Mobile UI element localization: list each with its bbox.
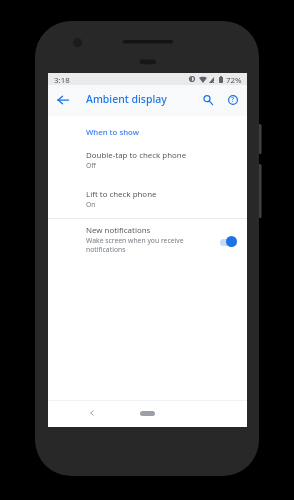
button[interactable]: Lift to check phone bbox=[48, 182, 247, 215]
button[interactable]: Home bbox=[140, 411, 155, 416]
button[interactable]: New notifications bbox=[48, 218, 247, 262]
staticText: ? bbox=[231, 95, 235, 105]
staticText: Wake screen when you receive notificatio… bbox=[86, 236, 184, 254]
staticText: 3:18 bbox=[54, 75, 70, 86]
button[interactable]: Double-tap to check phone bbox=[48, 143, 247, 176]
staticText: Lift to check phone bbox=[86, 189, 157, 200]
button[interactable]: New notifications toggle bbox=[219, 233, 241, 251]
button[interactable]: Back bbox=[86, 407, 98, 419]
staticText: New notifications bbox=[86, 225, 151, 236]
button[interactable]: Search bbox=[196, 88, 220, 112]
button[interactable]: Navigate up bbox=[48, 85, 77, 114]
staticText: Off bbox=[86, 161, 96, 170]
staticText: Ambient display bbox=[86, 92, 167, 106]
staticText: Double-tap to check phone bbox=[86, 150, 187, 161]
button[interactable]: Help bbox=[221, 88, 245, 112]
staticText: On bbox=[86, 200, 96, 209]
staticText: When to show bbox=[86, 127, 139, 138]
staticText: 72% bbox=[226, 75, 242, 86]
